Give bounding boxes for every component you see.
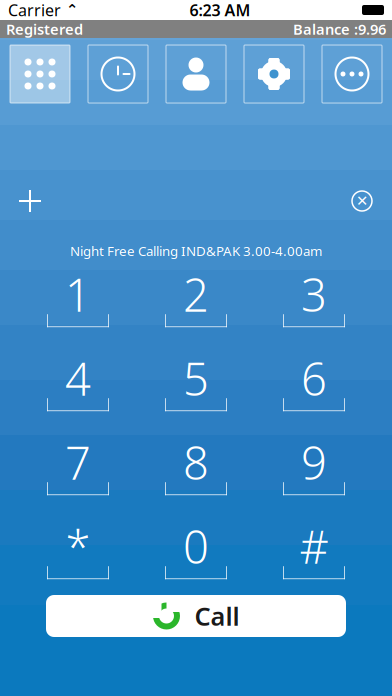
staticText: 1 — [65, 264, 91, 324]
button[interactable]: 5 — [146, 354, 246, 416]
staticText: ✕ — [356, 193, 368, 209]
staticText: 6:23 AM — [189, 0, 250, 21]
button[interactable]: Add contact — [8, 181, 52, 221]
staticText: 6 — [301, 348, 327, 408]
button[interactable]: 6 — [264, 354, 364, 416]
button[interactable]: 7 — [28, 438, 128, 500]
staticText: 9 — [301, 432, 327, 492]
button[interactable]: Clear — [340, 181, 384, 221]
button[interactable]: 0 — [146, 522, 246, 584]
staticText: Registered — [6, 19, 83, 39]
button[interactable]: # — [264, 522, 364, 584]
staticText: Night Free Calling IND&PAK 3.00-4.00am — [70, 242, 322, 260]
button[interactable]: Call — [46, 595, 346, 637]
staticText: 8 — [183, 432, 209, 492]
staticText: Call — [194, 599, 239, 633]
button[interactable]: 3 — [264, 270, 364, 332]
staticText: Balance :9.96 — [293, 19, 386, 39]
button[interactable]: Contacts — [166, 45, 226, 103]
button[interactable]: 2 — [146, 270, 246, 332]
staticText: 2 — [183, 264, 209, 324]
staticText: 3 — [301, 264, 327, 324]
button[interactable]: 8 — [146, 438, 246, 500]
button[interactable]: 4 — [28, 354, 128, 416]
staticText: 4 — [65, 348, 91, 408]
button[interactable]: More — [322, 45, 382, 103]
staticText: 5 — [183, 348, 209, 408]
staticText: 7 — [65, 432, 91, 492]
staticText: * — [65, 516, 90, 576]
staticText: Carrier — [8, 0, 61, 21]
button[interactable]: Keypad — [10, 45, 70, 103]
button[interactable]: Settings — [244, 45, 304, 103]
staticText: # — [299, 516, 328, 576]
staticText: 0 — [183, 516, 209, 576]
button[interactable]: Recents — [88, 45, 148, 103]
button[interactable]: * — [28, 522, 128, 584]
staticText: ⌃ — [61, 2, 78, 18]
button[interactable]: 9 — [264, 438, 364, 500]
button[interactable]: 1 — [28, 270, 128, 332]
